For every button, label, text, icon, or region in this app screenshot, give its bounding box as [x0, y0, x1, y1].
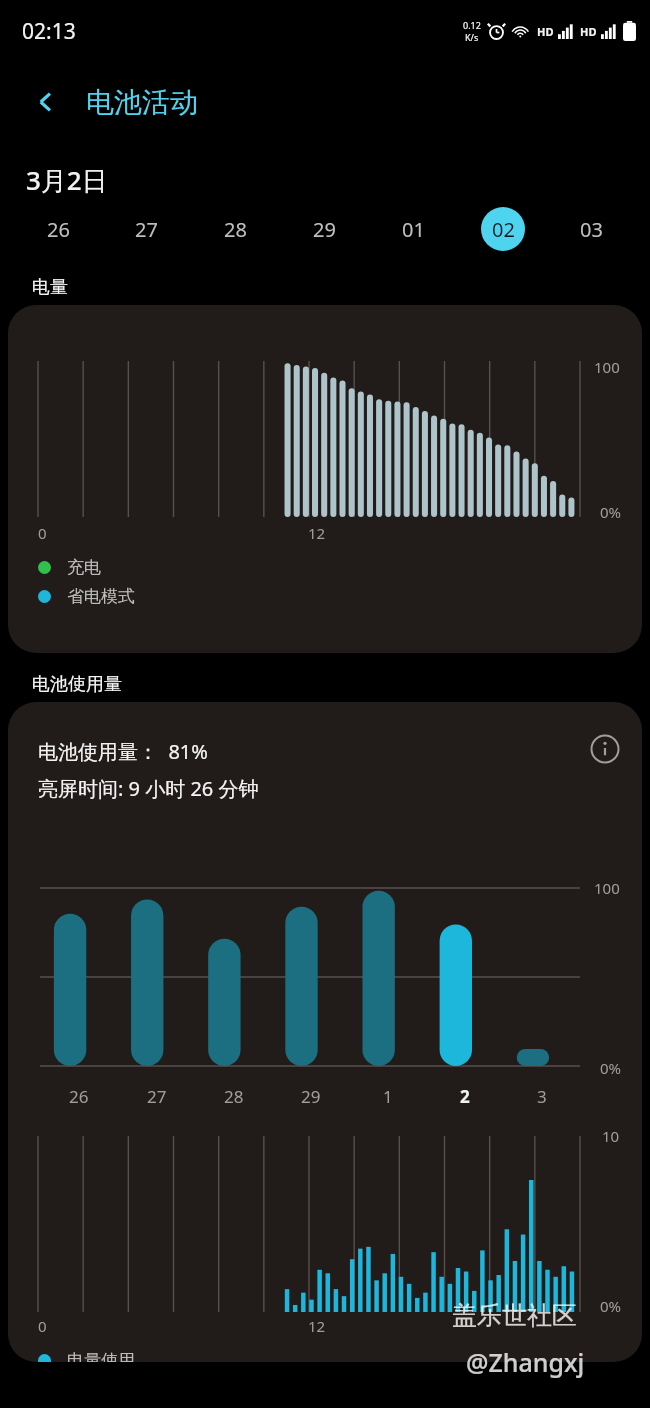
staticText: 27 — [147, 1085, 167, 1108]
staticText: 02:13 — [22, 17, 76, 46]
button[interactable]: 26 — [14, 201, 102, 257]
staticText: 电池使用量： 81% — [38, 738, 208, 765]
staticText: 26 — [69, 1085, 89, 1108]
staticText: 电量使用 — [67, 1350, 135, 1362]
staticText: 省电模式 — [67, 586, 135, 607]
button[interactable]: 电池使用量： 81% — [8, 702, 642, 1362]
staticText: HD — [537, 24, 554, 39]
staticText: 2 — [460, 1085, 470, 1108]
staticText: 10 — [602, 1126, 620, 1146]
staticText: 12 — [308, 523, 326, 543]
staticText: 29 — [301, 1085, 321, 1108]
button[interactable]: 29 — [280, 201, 369, 257]
button[interactable]: 03 — [547, 201, 636, 257]
staticText: 1 — [383, 1085, 393, 1108]
staticText: 0 — [38, 1316, 47, 1336]
staticText: 0% — [600, 502, 622, 522]
staticText: 电池使用量 — [32, 673, 122, 696]
staticText: 02 — [492, 216, 515, 243]
staticText: 3月2日 — [26, 162, 108, 198]
staticText: 26 — [47, 216, 70, 243]
staticText: 12 — [308, 1316, 326, 1336]
staticText: 3 — [537, 1085, 547, 1108]
button[interactable]: 01 — [369, 201, 458, 257]
staticText: 0.12 — [463, 19, 481, 31]
button[interactable]: 100 — [8, 305, 642, 653]
staticText: 0% — [600, 1058, 622, 1078]
staticText: 充电 — [67, 557, 101, 578]
staticText: 28 — [224, 216, 247, 243]
staticText: 电量 — [32, 276, 68, 299]
staticText: 盖乐世社区 — [452, 1300, 577, 1331]
staticText: K/s — [465, 31, 479, 43]
button[interactable]: 28 — [191, 201, 280, 257]
button[interactable]: 02 — [458, 201, 547, 257]
staticText: 29 — [313, 216, 336, 243]
staticText: 0 — [38, 523, 47, 543]
staticText: 01 — [402, 216, 425, 243]
button[interactable]: Back — [24, 80, 68, 124]
staticText: @Zhangxj — [466, 1345, 585, 1379]
button[interactable]: 27 — [102, 201, 191, 257]
staticText: 28 — [224, 1085, 244, 1108]
staticText: 100 — [594, 878, 620, 898]
button[interactable]: Info — [582, 726, 628, 772]
staticText: 亮屏时间: 9 小时 26 分钟 — [38, 775, 259, 802]
staticText: 0% — [600, 1296, 622, 1316]
staticText: 100 — [594, 357, 620, 377]
staticText: HD — [580, 24, 597, 39]
staticText: 27 — [135, 216, 158, 243]
staticText: 电池活动 — [86, 85, 198, 120]
staticText: 03 — [580, 216, 603, 243]
